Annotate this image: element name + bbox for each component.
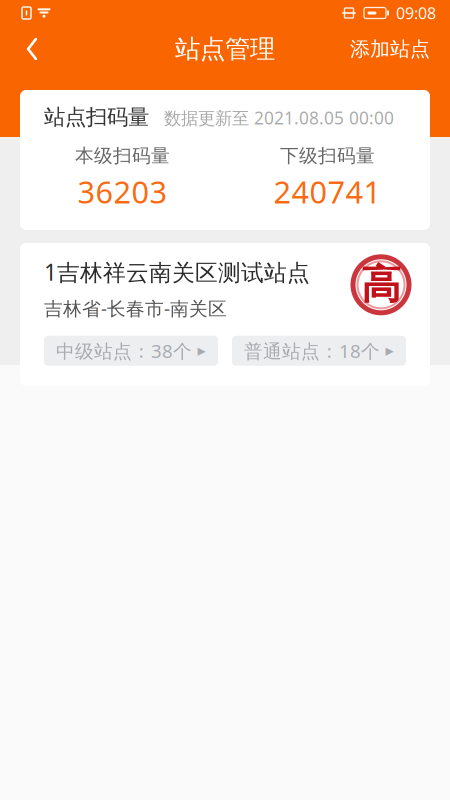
staticText: 中级站点：38个: [56, 338, 192, 363]
staticText: 吉林省-长春市-南关区: [44, 296, 227, 321]
staticText: 本级扫码量: [75, 144, 170, 167]
staticText: 数据更新至 2021.08.05 00:00: [164, 106, 394, 129]
staticText: 添加站点: [350, 37, 430, 61]
button[interactable]: 添加站点: [336, 26, 444, 72]
staticText: ▶: [197, 345, 205, 357]
button[interactable]: Back: [8, 26, 56, 72]
staticText: 下级扫码量: [280, 144, 375, 167]
staticText: 36203: [77, 171, 167, 212]
staticText: 240741: [273, 171, 381, 212]
staticText: 站点扫码量: [44, 104, 149, 130]
staticText: ▶: [385, 345, 393, 357]
staticText: 普通站点：18个: [244, 338, 380, 363]
staticText: 高: [361, 260, 401, 309]
staticText: 09:08: [396, 2, 436, 24]
staticText: 站点管理: [175, 33, 275, 64]
staticText: 1吉林祥云南关区测试站点: [44, 257, 310, 287]
button[interactable]: 1吉林祥云南关区测试站点: [20, 243, 430, 386]
